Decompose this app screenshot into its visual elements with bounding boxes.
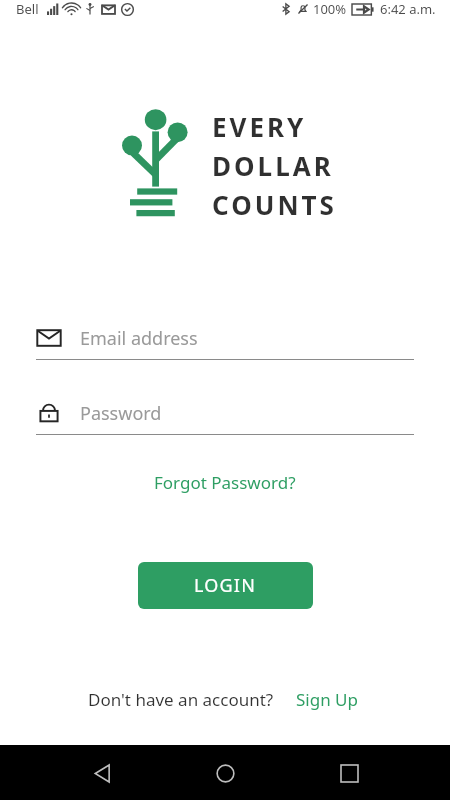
staticText: 6:42 a.m. xyxy=(380,0,436,18)
button[interactable]: Forgot Password? xyxy=(146,465,304,500)
button[interactable]: Sign Up xyxy=(292,684,362,715)
button[interactable]: Password xyxy=(36,400,414,435)
staticText: DOLLAR xyxy=(212,148,334,183)
staticText: Don't have an account? xyxy=(88,688,274,711)
staticText: LOGIN xyxy=(194,573,257,598)
staticText: Password xyxy=(80,401,162,426)
button[interactable]: Back xyxy=(80,751,124,795)
staticText: EVERY xyxy=(212,109,307,144)
other: Email xyxy=(36,325,62,351)
staticText: 100% xyxy=(313,0,347,18)
button[interactable]: Email xyxy=(36,325,414,360)
staticText: Sign Up xyxy=(296,688,358,711)
staticText: Forgot Password? xyxy=(154,471,296,494)
button[interactable]: Home xyxy=(203,751,247,795)
staticText: Email address xyxy=(80,326,198,351)
staticText: Bell xyxy=(16,0,39,18)
staticText: COUNTS xyxy=(212,187,337,222)
button[interactable]: LOGIN xyxy=(138,562,313,609)
other: Password xyxy=(36,400,62,426)
button[interactable]: Recent apps xyxy=(327,751,371,795)
